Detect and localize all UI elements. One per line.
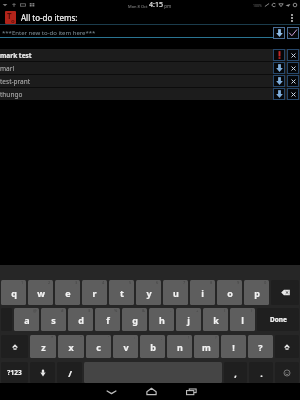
staticText: p <box>254 287 260 299</box>
button[interactable]: Shift <box>1 335 28 358</box>
button[interactable]: marl <box>0 62 300 74</box>
staticText: t <box>120 287 124 299</box>
button[interactable]: mark test <box>0 49 300 61</box>
button[interactable]: Recent apps <box>171 383 211 400</box>
button[interactable]: Delete item <box>287 88 299 100</box>
button[interactable]: i <box>190 280 215 305</box>
button[interactable]: , <box>224 362 247 383</box>
button[interactable]: n <box>167 335 192 358</box>
button[interactable]: thungo <box>0 88 300 100</box>
staticText: pm <box>163 3 172 9</box>
staticText: z <box>41 341 46 353</box>
staticText: g <box>132 314 138 326</box>
button[interactable]: g <box>122 308 147 331</box>
button[interactable]: r <box>82 280 107 305</box>
staticText: " <box>80 335 82 340</box>
button[interactable]: u <box>163 280 188 305</box>
button[interactable]: Backspace <box>271 280 299 305</box>
staticText: $ <box>88 308 91 313</box>
button[interactable]: x <box>58 335 84 358</box>
staticText: marl <box>0 64 15 73</box>
button[interactable]: m <box>194 335 219 358</box>
staticText: 7 <box>183 280 186 285</box>
staticText: ' <box>108 335 109 340</box>
button[interactable]: h <box>149 308 174 331</box>
staticText: d <box>78 314 84 326</box>
staticText: 2 <box>48 280 51 285</box>
button[interactable]: test-prant <box>0 75 300 87</box>
staticText: v <box>123 341 129 353</box>
staticText: 8 <box>210 280 213 285</box>
button[interactable]: v <box>113 335 138 358</box>
staticText: + <box>196 308 199 313</box>
button[interactable]: Voice typing <box>30 362 55 383</box>
button[interactable]: k <box>203 308 228 331</box>
staticText: c <box>96 341 101 353</box>
button[interactable]: Insert at top <box>273 27 285 39</box>
button[interactable]: Change priority <box>273 49 285 61</box>
staticText: q <box>11 287 17 299</box>
button[interactable]: c <box>86 335 111 358</box>
button[interactable]: o <box>217 280 242 305</box>
button[interactable]: e <box>55 280 80 305</box>
button[interactable]: s <box>41 308 66 331</box>
staticText: @ <box>33 308 37 313</box>
staticText: 100% <box>253 3 262 8</box>
staticText: thungo <box>0 90 23 99</box>
staticText: ? <box>215 335 217 340</box>
button[interactable]: b <box>140 335 165 358</box>
button[interactable]: a <box>14 308 39 331</box>
button[interactable]: Delete item <box>287 75 299 87</box>
staticText: 4 <box>102 280 105 285</box>
button[interactable]: z <box>30 335 56 358</box>
staticText: ***Enter new to-do item here*** <box>2 29 96 37</box>
staticText: ) <box>251 308 253 313</box>
button[interactable]: ! <box>221 335 246 358</box>
button[interactable]: Shift <box>275 335 299 358</box>
button[interactable]: Home <box>131 383 171 400</box>
button[interactable]: . <box>249 362 273 383</box>
button[interactable]: t <box>109 280 134 305</box>
button[interactable]: Delete item <box>287 62 299 74</box>
button[interactable]: f <box>95 308 120 331</box>
button[interactable]: Change priority <box>273 62 285 74</box>
staticText: i <box>201 287 204 299</box>
staticText: n <box>177 341 183 353</box>
staticText: # <box>61 308 64 313</box>
staticText: r <box>92 287 97 299</box>
button[interactable]: Emoji <box>275 362 299 383</box>
button[interactable]: p <box>244 280 269 305</box>
staticText: ? <box>258 341 263 353</box>
button[interactable]: l <box>230 308 255 331</box>
staticText: k <box>213 314 219 326</box>
button[interactable]: j <box>176 308 201 331</box>
button[interactable]: w <box>28 280 53 305</box>
staticText: * <box>51 335 54 340</box>
staticText: h <box>159 314 165 326</box>
button[interactable]: ?123 <box>1 362 28 383</box>
button[interactable]: Delete item <box>287 49 299 61</box>
button[interactable]: ? <box>248 335 273 358</box>
staticText: ! <box>232 341 235 353</box>
staticText: mark test <box>0 51 32 60</box>
staticText: l <box>241 314 244 326</box>
staticText: 3 <box>75 280 78 285</box>
staticText: test-prant <box>0 77 31 86</box>
staticText: ?123 <box>7 368 22 377</box>
button[interactable]: / <box>57 362 82 383</box>
button[interactable]: More options <box>284 10 300 25</box>
button[interactable]: Add item <box>287 27 299 39</box>
button[interactable]: Done <box>257 308 299 331</box>
button[interactable]: y <box>136 280 161 305</box>
button[interactable]: Hide keyboard <box>91 383 131 400</box>
button[interactable]: Change priority <box>273 75 285 87</box>
button[interactable]: Change priority <box>273 88 285 100</box>
staticText: o <box>227 287 233 299</box>
staticText: ( <box>224 308 226 313</box>
staticText: , <box>234 367 237 379</box>
button[interactable]: d <box>68 308 93 331</box>
button[interactable]: q <box>1 280 26 305</box>
